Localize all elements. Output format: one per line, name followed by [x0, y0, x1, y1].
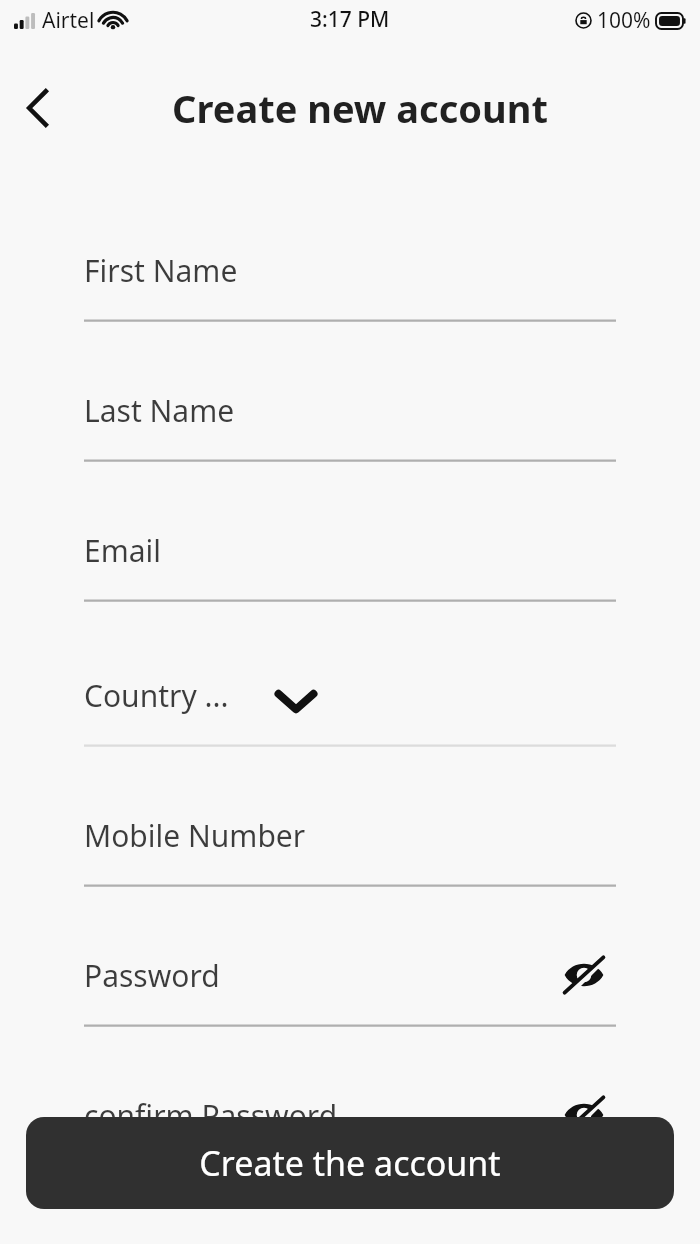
staticText: 100% [597, 6, 651, 35]
staticText: Create new account [172, 82, 548, 134]
staticText: First Name [84, 250, 238, 291]
staticText: 3:17 PM [310, 5, 390, 34]
staticText: Airtel [42, 6, 95, 35]
staticText: confirm Password [84, 1095, 338, 1136]
button[interactable]: Show password [556, 947, 612, 1003]
button[interactable]: Back [8, 78, 68, 138]
button[interactable]: Last Name [84, 368, 616, 462]
button[interactable]: confirm Password [84, 1073, 616, 1167]
staticText: Password [84, 955, 220, 996]
staticText: Last Name [84, 390, 235, 431]
button[interactable]: Select country [268, 673, 324, 729]
staticText: Email [84, 530, 162, 571]
staticText: Create the account [199, 1140, 501, 1186]
button[interactable]: Show password [556, 1087, 612, 1143]
button[interactable]: Email [84, 508, 616, 602]
button[interactable]: Mobile Number [84, 793, 616, 887]
button[interactable]: Create the account [26, 1117, 674, 1209]
button[interactable]: First Name [84, 228, 616, 322]
button[interactable]: Password [84, 933, 616, 1027]
button[interactable]: Country ... [84, 653, 616, 747]
staticText: Country ... [84, 675, 229, 716]
staticText: Mobile Number [84, 815, 306, 856]
